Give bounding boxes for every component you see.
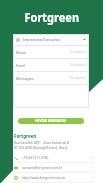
button[interactable]: contact — [14, 173, 94, 182]
staticText: Rua Castilho 2891 - Zona Industrial II — [14, 141, 70, 145]
staticText: Impressoras/Cartuchos — [23, 37, 61, 42]
staticText: Obrigatório — [70, 63, 86, 67]
button[interactable]: Email — [13, 59, 89, 71]
staticText: +55 44 3121-3700 — [22, 156, 49, 160]
staticText: Fortgreen — [14, 133, 37, 139]
other: contact — [14, 176, 18, 180]
staticText: Nome — [16, 50, 26, 55]
staticText: Fortgreen — [24, 8, 79, 25]
staticText: ENVIAR MENSAGEM — [35, 119, 67, 123]
staticText: http://www.fortgreen.com.br — [22, 176, 66, 180]
other: contact — [14, 156, 18, 160]
staticText: Obrigatório — [70, 76, 86, 80]
staticText: Email — [16, 63, 25, 68]
button[interactable]: Nome — [13, 46, 89, 58]
staticText: 87.160-0000 Maringá/Paraná, Brasil — [14, 146, 68, 150]
staticText: contato@fortgreen.com.br — [22, 166, 63, 170]
button[interactable]: contact — [14, 153, 94, 162]
button[interactable]: Impressoras/Cartuchos — [13, 34, 89, 45]
other: contact — [14, 166, 18, 170]
button[interactable]: contact — [14, 163, 94, 172]
button[interactable]: ENVIAR MENSAGEM — [18, 118, 84, 124]
button[interactable]: Mensagem — [13, 72, 89, 84]
staticText: Obrigatório — [70, 50, 86, 54]
staticText: Mensagem — [16, 76, 34, 81]
